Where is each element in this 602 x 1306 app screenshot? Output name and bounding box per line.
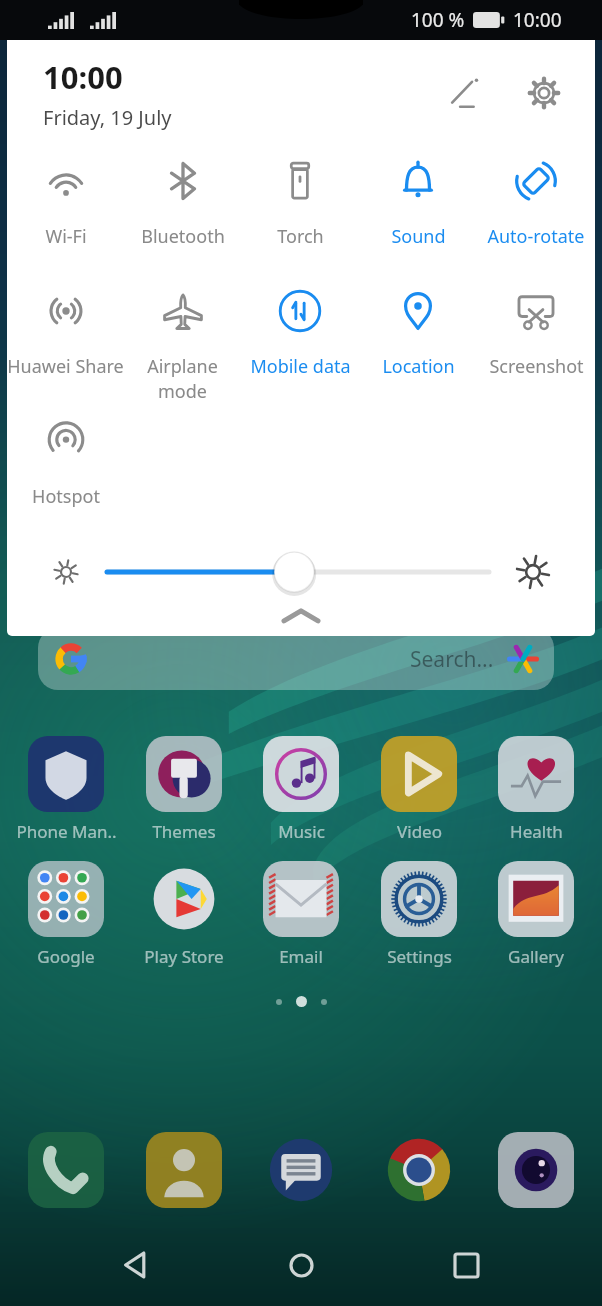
- staticText: Bluetooth: [141, 224, 225, 249]
- button[interactable]: [130, 1132, 238, 1208]
- button[interactable]: Mobile data: [241, 276, 359, 406]
- staticText: Huawei Share: [7, 354, 124, 379]
- button[interactable]: Google: [12, 861, 120, 968]
- button[interactable]: Edit: [435, 64, 493, 122]
- button[interactable]: Hotspot: [7, 406, 124, 536]
- button[interactable]: Sound: [359, 146, 477, 276]
- button[interactable]: Torch: [241, 146, 359, 276]
- staticText: Play Store: [144, 945, 224, 968]
- staticText: Health: [510, 820, 563, 843]
- button[interactable]: [12, 1132, 120, 1208]
- staticText: Search...: [410, 645, 494, 674]
- button[interactable]: Recents: [437, 1236, 495, 1294]
- button[interactable]: Video: [365, 736, 473, 843]
- button[interactable]: Location: [359, 276, 477, 406]
- button[interactable]: Huawei Share: [7, 276, 124, 406]
- staticText: Airplane mode: [124, 354, 241, 404]
- button[interactable]: Phone Man..: [12, 736, 120, 843]
- staticText: Screenshot: [489, 354, 584, 379]
- button[interactable]: Screenshot: [477, 276, 595, 406]
- button[interactable]: Gallery: [482, 861, 590, 968]
- button[interactable]: Settings: [515, 64, 573, 122]
- staticText: Friday, 19 July: [43, 104, 172, 131]
- button[interactable]: Email: [247, 861, 355, 968]
- button[interactable]: Themes: [130, 736, 238, 843]
- button[interactable]: Search...: [38, 628, 554, 690]
- staticText: Sound: [391, 224, 446, 249]
- staticText: Video: [397, 820, 442, 843]
- button[interactable]: Settings: [365, 861, 473, 968]
- staticText: Music: [278, 820, 325, 843]
- button[interactable]: Home: [272, 1236, 330, 1294]
- staticText: Torch: [277, 224, 324, 249]
- button[interactable]: Back: [107, 1236, 165, 1294]
- staticText: 10:00: [513, 7, 562, 33]
- staticText: Hotspot: [32, 484, 100, 509]
- staticText: Mobile data: [250, 354, 351, 379]
- button[interactable]: Bluetooth: [124, 146, 241, 276]
- button[interactable]: Health: [482, 736, 590, 843]
- button[interactable]: Auto-rotate: [477, 146, 595, 276]
- staticText: Email: [279, 945, 323, 968]
- button[interactable]: [482, 1132, 590, 1208]
- button[interactable]: Music: [247, 736, 355, 843]
- button[interactable]: [107, 550, 489, 594]
- staticText: Themes: [152, 820, 216, 843]
- staticText: Gallery: [508, 945, 564, 968]
- staticText: 10:00: [43, 56, 123, 98]
- button[interactable]: [247, 1132, 355, 1208]
- staticText: Phone Man..: [16, 820, 117, 843]
- button[interactable]: Expand: [7, 608, 595, 636]
- staticText: Auto-rotate: [487, 224, 585, 249]
- staticText: Google: [37, 945, 95, 968]
- button[interactable]: Play Store: [130, 861, 238, 968]
- staticText: Location: [382, 354, 455, 379]
- staticText: 100 %: [411, 7, 465, 33]
- staticText: Settings: [387, 945, 452, 968]
- staticText: Wi-Fi: [45, 224, 87, 249]
- button[interactable]: Airplane mode: [124, 276, 241, 406]
- button[interactable]: Wi-Fi: [7, 146, 124, 276]
- button[interactable]: [365, 1132, 473, 1208]
